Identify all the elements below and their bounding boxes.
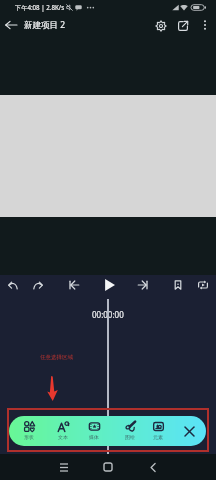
staticText: 形状 [24,434,34,440]
staticText: 元素 [153,434,163,440]
staticText: 下午4:08 | 2.8K/s [15,3,65,11]
staticText: 00:00:00 [92,309,124,320]
staticText: 任意选择区域 [40,354,73,361]
button[interactable]: Export [174,17,191,34]
button[interactable]: 元素 [142,416,174,446]
staticText: 媒体 [89,434,99,440]
button[interactable]: Bookmark [170,277,186,293]
button[interactable]: Loop [195,277,211,293]
button[interactable]: Undo [5,277,21,293]
button[interactable]: Home [98,457,118,477]
button[interactable]: Settings [152,17,169,34]
button[interactable]: Back [143,457,163,477]
staticText: 文本 [58,434,68,440]
button[interactable]: Back [2,16,20,34]
button[interactable]: Recents [54,457,74,477]
staticText: 新建项目 2 [24,19,66,31]
button[interactable]: 文本 [47,416,79,446]
button[interactable]: More options [197,17,213,33]
button[interactable]: Play [101,277,117,293]
button[interactable]: 形状 [13,416,45,446]
button[interactable]: 图绘 [114,416,146,446]
button[interactable]: Skip to start [66,277,82,293]
button[interactable]: Skip to end [135,277,151,293]
button[interactable]: 媒体 [78,416,110,446]
button[interactable]: Close [175,416,203,446]
staticText: 图绘 [125,434,135,440]
button[interactable]: Redo [30,277,46,293]
